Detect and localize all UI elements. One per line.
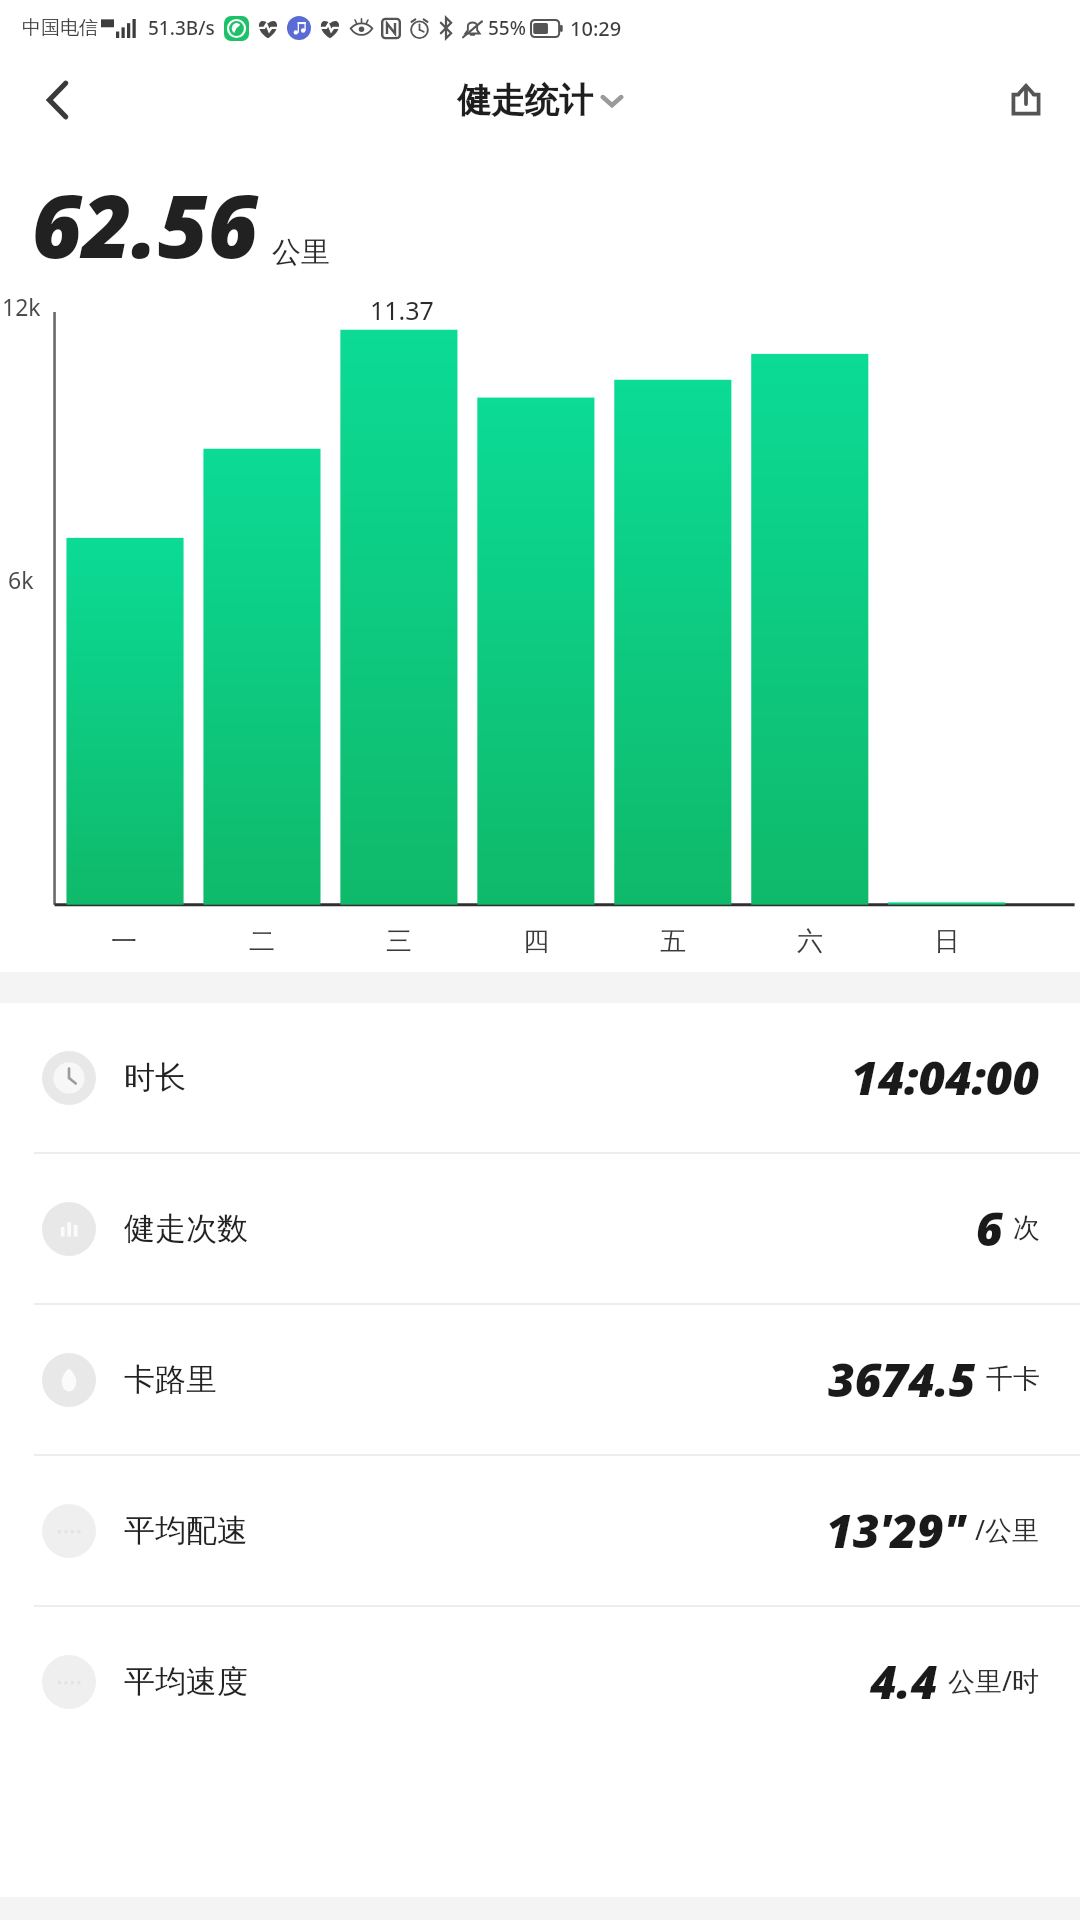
staticText: 51.3B/s [148, 15, 215, 41]
button[interactable]: 平均配速 [0, 1456, 1080, 1605]
staticText: 11.37 [370, 293, 434, 327]
staticText: 平均速度 [124, 1662, 248, 1701]
staticText: 四 [523, 925, 549, 958]
staticText: 62.56 [32, 166, 258, 283]
staticText: 12k [2, 291, 41, 322]
staticText: 五 [660, 925, 686, 958]
staticText: 千卡 [986, 1362, 1040, 1396]
staticText: 55% [488, 15, 526, 41]
staticText: 6k [8, 564, 34, 595]
button[interactable]: 卡路里 [0, 1305, 1080, 1454]
button[interactable]: Share [998, 72, 1054, 128]
staticText: 日 [934, 925, 960, 958]
staticText: 3674.5 [828, 1348, 976, 1411]
staticText: 时长 [124, 1058, 186, 1097]
button[interactable]: 健走统计 [457, 79, 623, 122]
staticText: 三 [386, 925, 412, 958]
staticText: 平均配速 [124, 1511, 248, 1550]
staticText: 健走次数 [124, 1209, 248, 1248]
staticText: 二 [249, 925, 275, 958]
staticText: 公里/时 [948, 1662, 1040, 1699]
staticText: 10:29 [570, 15, 622, 42]
staticText: 4.4 [870, 1650, 938, 1713]
staticText: 14:04:00 [851, 1046, 1040, 1109]
button[interactable]: 时长 [0, 1003, 1080, 1152]
button[interactable]: Back [30, 72, 86, 128]
staticText: 健走统计 [457, 79, 593, 122]
staticText: 13'29" [826, 1499, 965, 1562]
staticText: /公里 [975, 1511, 1040, 1548]
staticText: 次 [1013, 1211, 1040, 1245]
staticText: 中国电信 [22, 16, 98, 40]
staticText: 6 [976, 1197, 1003, 1260]
staticText: 一 [111, 925, 137, 958]
button[interactable]: 平均速度 [0, 1607, 1080, 1756]
staticText: 卡路里 [124, 1360, 217, 1399]
button[interactable]: 健走次数 [0, 1154, 1080, 1303]
staticText: 六 [797, 925, 823, 958]
staticText: 公里 [272, 234, 330, 271]
